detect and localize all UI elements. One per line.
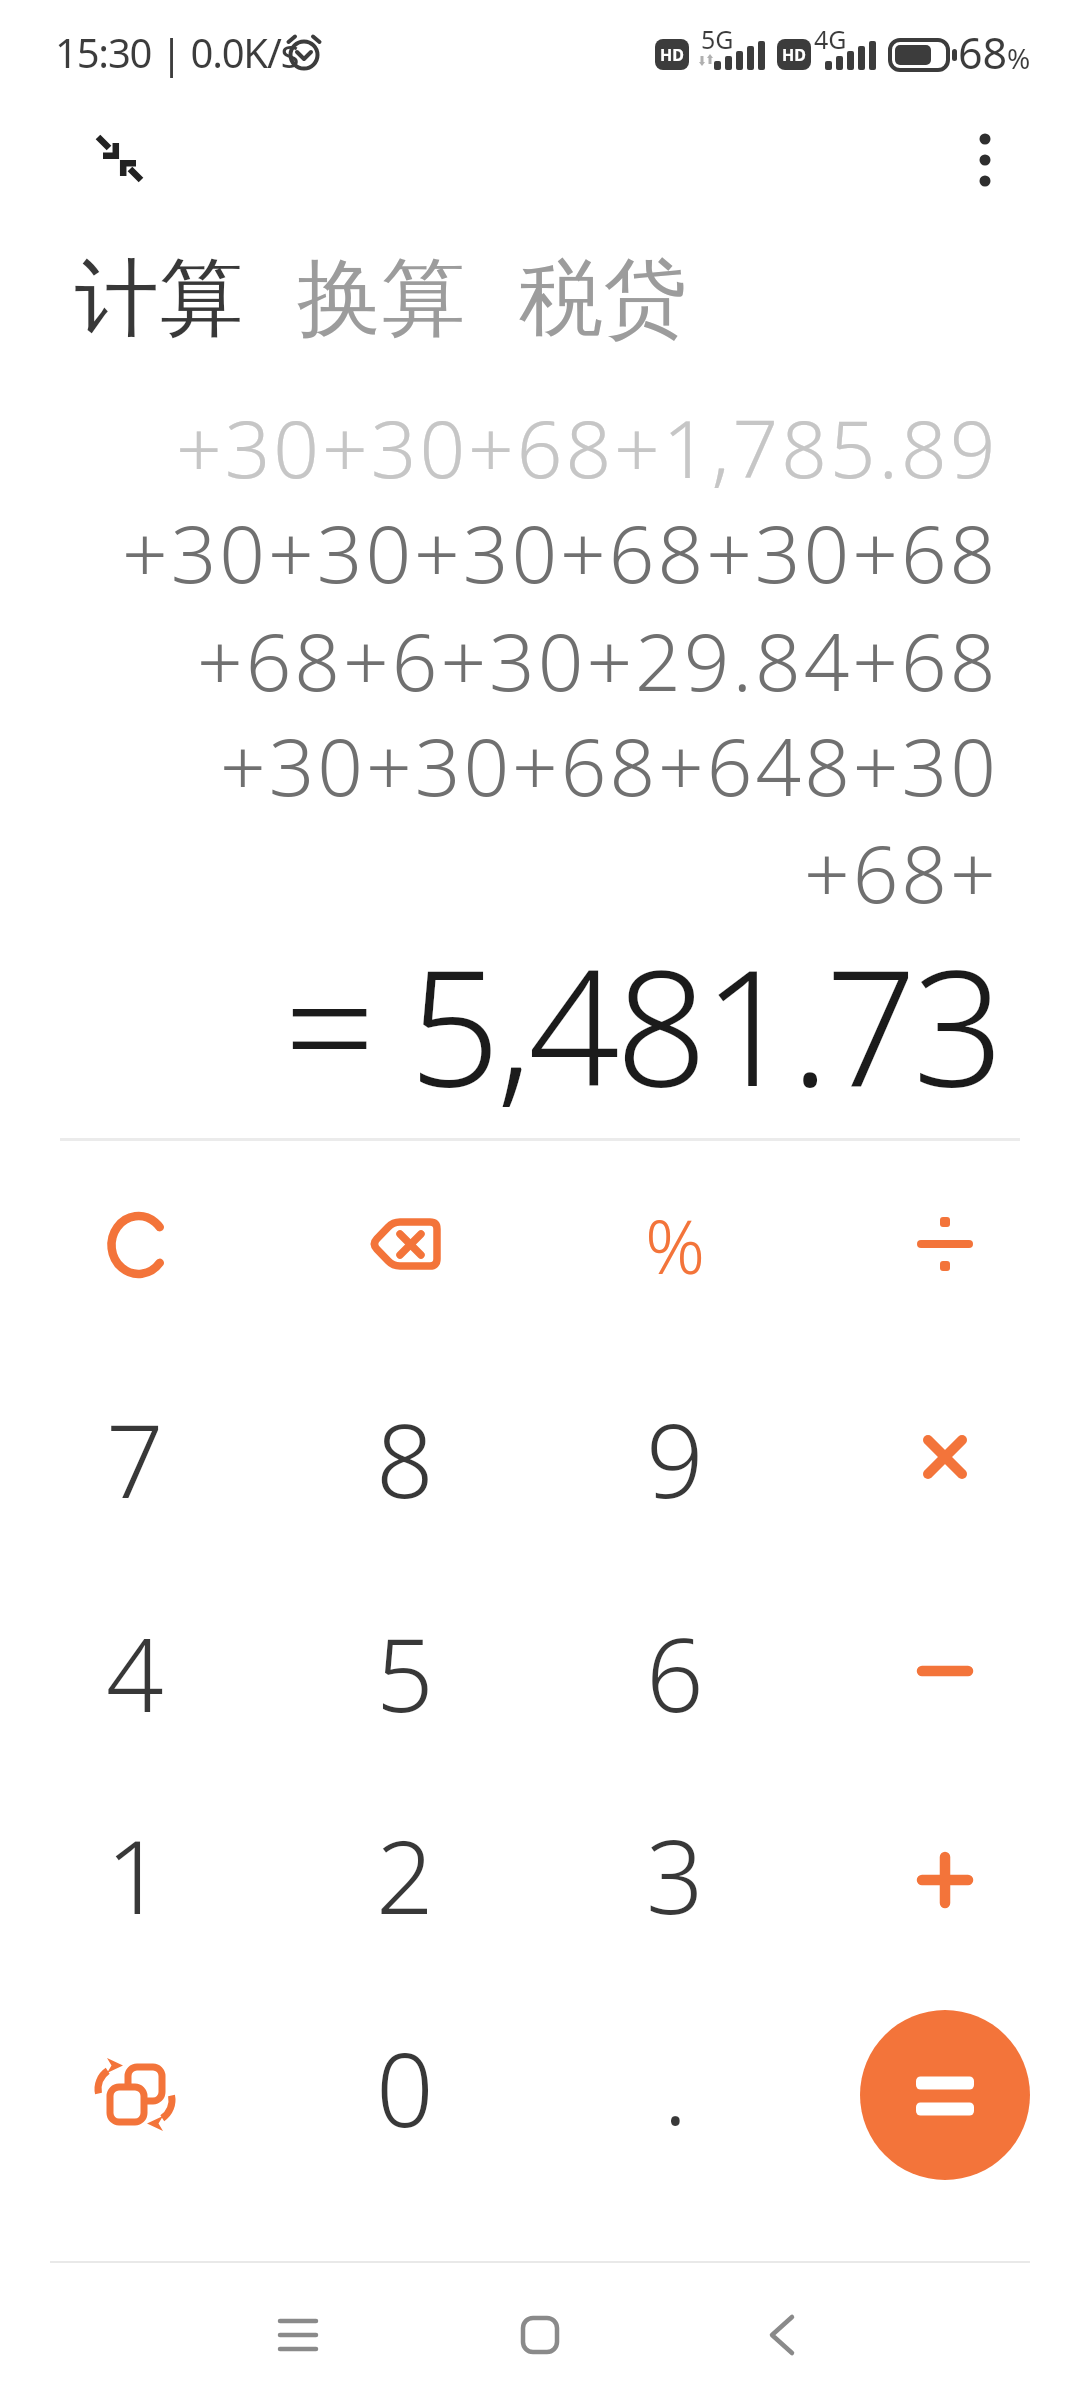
button[interactable]: 7 <box>0 1353 270 1565</box>
staticText: +30+30+30+68+30+68 <box>122 497 999 606</box>
staticText: HD <box>660 44 684 66</box>
button[interactable] <box>208 2280 388 2390</box>
button[interactable]: 3 <box>540 1769 810 1981</box>
staticText: 8 <box>376 1390 434 1528</box>
staticText: 0 <box>376 2019 434 2157</box>
staticText: 9 <box>646 1390 704 1528</box>
button[interactable] <box>810 1353 1080 1565</box>
staticText: 5 <box>376 1604 434 1742</box>
button[interactable]: 5 <box>270 1567 540 1779</box>
button[interactable]: 9 <box>540 1353 810 1565</box>
button[interactable]: 税贷 <box>519 246 687 352</box>
staticText: % <box>1007 39 1031 77</box>
button[interactable]: 1 <box>0 1769 270 1981</box>
button[interactable]: 2 <box>270 1769 540 1981</box>
staticText: +30+30+68+648+30 <box>220 710 999 819</box>
button[interactable] <box>692 2280 872 2390</box>
button[interactable] <box>810 1139 1080 1351</box>
staticText: 税贷 <box>519 246 687 352</box>
staticText: 计算 <box>75 246 243 352</box>
staticText: 换算 <box>297 246 465 352</box>
staticText: 4G <box>814 22 847 56</box>
staticText: = 5,481.73 <box>284 915 1001 1115</box>
button[interactable]: 0 <box>270 1988 540 2200</box>
staticText: 3 <box>646 1806 704 1944</box>
button[interactable]: % <box>540 1139 810 1351</box>
button[interactable] <box>270 1139 540 1351</box>
staticText: 15:30 | 0.0K/s <box>55 25 299 79</box>
button[interactable]: 计算 <box>75 246 243 352</box>
button[interactable]: 4 <box>0 1567 270 1779</box>
button[interactable]: 8 <box>270 1353 540 1565</box>
button[interactable] <box>0 1988 270 2200</box>
staticText: . <box>663 2017 688 2155</box>
staticText: 7 <box>106 1390 164 1528</box>
staticText: 6 <box>646 1604 704 1742</box>
button[interactable] <box>810 1567 1080 1779</box>
staticText: % <box>645 1195 706 1296</box>
staticText: 1 <box>106 1806 164 1944</box>
staticText: +68+6+30+29.84+68 <box>197 605 999 714</box>
button[interactable]: 换算 <box>297 246 465 352</box>
staticText: 5G <box>701 22 734 56</box>
staticText: +30+30+68+1,785.89 <box>176 392 999 501</box>
button[interactable] <box>85 125 155 195</box>
button[interactable] <box>810 1769 1080 1981</box>
staticText: HD <box>782 44 806 66</box>
staticText: 2 <box>376 1806 434 1944</box>
button[interactable]: 6 <box>540 1567 810 1779</box>
staticText: 4 <box>106 1604 164 1742</box>
button[interactable] <box>450 2280 630 2390</box>
staticText: +68+ <box>804 817 999 926</box>
button[interactable] <box>950 125 1020 195</box>
staticText: 68 <box>958 23 1008 82</box>
button[interactable] <box>0 1139 270 1351</box>
button[interactable]: . <box>540 1988 810 2200</box>
button[interactable] <box>860 2010 1030 2180</box>
